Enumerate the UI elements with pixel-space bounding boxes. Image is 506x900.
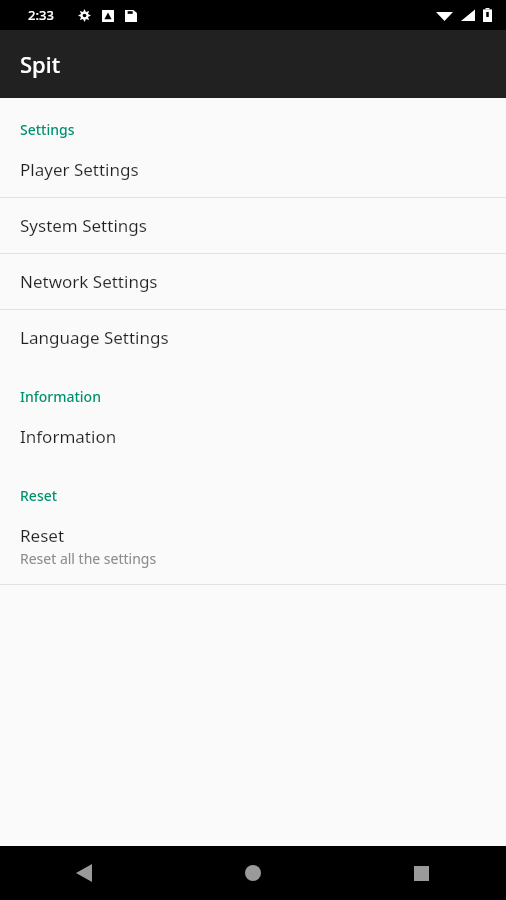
staticText: System Settings: [20, 214, 147, 237]
button[interactable]: Language Settings: [0, 310, 506, 365]
staticText: Settings: [20, 120, 75, 139]
staticText: Reset: [20, 486, 58, 505]
button[interactable]: Network Settings: [0, 254, 506, 309]
staticText: Language Settings: [20, 326, 169, 349]
button[interactable]: Back: [0, 846, 168, 900]
staticText: Reset all the settings: [20, 549, 157, 568]
staticText: Information: [20, 387, 101, 406]
button[interactable]: Home: [168, 846, 337, 900]
staticText: Player Settings: [20, 158, 139, 181]
staticText: Network Settings: [20, 270, 158, 293]
button[interactable]: Information: [0, 409, 506, 464]
staticText: Information: [20, 425, 117, 448]
button[interactable]: System Settings: [0, 198, 506, 253]
staticText: Spit: [20, 49, 61, 79]
button[interactable]: Player Settings: [0, 142, 506, 197]
button[interactable]: Recent apps: [337, 846, 506, 900]
staticText: Reset: [20, 524, 65, 547]
button[interactable]: Reset: [0, 508, 506, 584]
staticText: 2:33: [28, 6, 54, 24]
